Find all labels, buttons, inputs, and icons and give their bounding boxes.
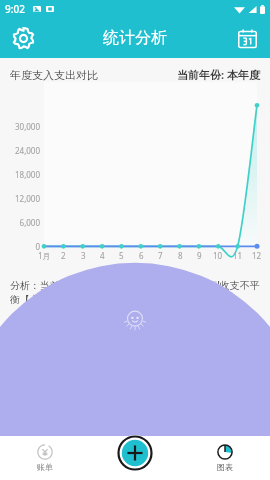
staticText: 分析：当前年度中0月收入最高，12月消费最高!收支不平衡【入不敷出】,建议您省吃… [10, 278, 262, 306]
staticText: 图表 [217, 462, 233, 472]
staticText: 9 [197, 250, 202, 261]
staticText: 11 [233, 250, 243, 261]
staticText: 12,000 [14, 193, 40, 204]
staticText: 统计分析 [103, 28, 167, 48]
staticText: 12 [252, 250, 262, 261]
staticText: 5 [119, 250, 124, 261]
staticText: 4 [100, 250, 105, 261]
staticText: 2 [61, 250, 66, 261]
staticText: 9:02 [5, 2, 25, 16]
button[interactable]: 图表 [180, 436, 270, 480]
button[interactable]: Settings [7, 22, 39, 54]
staticText: 3 [81, 250, 86, 261]
staticText: 年度支入支出对比 [10, 68, 98, 82]
button[interactable]: 账单 [0, 436, 90, 480]
staticText: 6,000 [19, 217, 40, 228]
staticText: 18,000 [14, 169, 40, 180]
staticText: 30,000 [14, 121, 40, 132]
staticText: 账单 [37, 462, 53, 472]
staticText: 1月 [38, 250, 51, 261]
staticText: 7 [158, 250, 163, 261]
staticText: 10 [213, 250, 223, 261]
button[interactable]: Calendar [232, 23, 262, 53]
staticText: 6 [139, 250, 144, 261]
staticText: 8 [178, 250, 183, 261]
staticText: 24,000 [14, 145, 40, 156]
staticText: 当前年份: 本年度 [177, 67, 260, 82]
staticText: 0 [35, 241, 40, 252]
button[interactable]: Add record [117, 435, 153, 471]
